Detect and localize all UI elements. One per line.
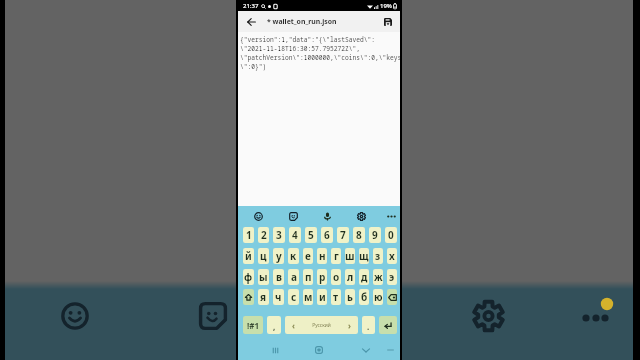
staticText: в: [276, 270, 282, 284]
staticText: х: [389, 249, 395, 263]
staticText: н: [319, 249, 326, 263]
button[interactable]: .: [362, 316, 375, 334]
staticText: \"2021-11-18T16:30:57.795272Z\",: [240, 44, 360, 53]
button[interactable]: э: [387, 269, 397, 285]
button[interactable]: Hide keyboard: [357, 341, 375, 359]
button[interactable]: ь: [345, 289, 355, 305]
button[interactable]: 4: [289, 227, 301, 243]
staticText: ›: [348, 320, 351, 331]
staticText: 9: [372, 228, 378, 242]
button[interactable]: д: [359, 269, 369, 285]
button[interactable]: к: [288, 248, 299, 264]
button[interactable]: н: [317, 248, 327, 264]
button[interactable]: Enter: [379, 316, 397, 334]
button[interactable]: ч: [273, 289, 284, 305]
staticText: * wallet_on_run.json: [267, 17, 337, 26]
button[interactable]: б: [359, 289, 369, 305]
staticText: к: [290, 249, 297, 263]
staticText: ы: [259, 270, 268, 284]
button[interactable]: з: [373, 248, 383, 264]
button[interactable]: в: [273, 269, 284, 285]
staticText: 3: [276, 228, 282, 242]
button[interactable]: и: [317, 289, 327, 305]
button[interactable]: ф: [243, 269, 254, 285]
button[interactable]: 7: [337, 227, 349, 243]
button[interactable]: Voice input: [318, 206, 336, 227]
button[interactable]: щ: [359, 248, 369, 264]
button[interactable]: More options: [382, 206, 400, 227]
staticText: п: [305, 270, 312, 284]
button[interactable]: с: [288, 289, 299, 305]
staticText: ‹: [292, 320, 295, 331]
staticText: я: [260, 290, 267, 304]
button[interactable]: 3: [273, 227, 285, 243]
button[interactable]: х: [387, 248, 397, 264]
staticText: ц: [260, 249, 267, 263]
button[interactable]: Back: [243, 11, 259, 32]
button[interactable]: ж: [373, 269, 383, 285]
staticText: ф: [244, 270, 253, 284]
button[interactable]: 6: [321, 227, 333, 243]
staticText: з: [375, 249, 381, 263]
button[interactable]: 2: [258, 227, 269, 243]
button[interactable]: 0: [385, 227, 397, 243]
button[interactable]: а: [288, 269, 299, 285]
button[interactable]: ц: [258, 248, 269, 264]
button[interactable]: Stickers: [284, 206, 302, 227]
button[interactable]: !#1: [243, 316, 263, 334]
button[interactable]: ш: [345, 248, 355, 264]
button[interactable]: Backspace: [387, 289, 397, 305]
button[interactable]: м: [303, 289, 313, 305]
staticText: ш: [345, 249, 355, 263]
button[interactable]: Emoji: [249, 206, 267, 227]
button[interactable]: я: [258, 289, 269, 305]
button[interactable]: 8: [353, 227, 365, 243]
button[interactable]: р: [317, 269, 327, 285]
button[interactable]: т: [331, 289, 341, 305]
staticText: 1: [246, 228, 252, 242]
staticText: 8: [356, 228, 362, 242]
staticText: 19%: [380, 2, 392, 10]
button[interactable]: ю: [373, 289, 383, 305]
button[interactable]: о: [331, 269, 341, 285]
button[interactable]: Space, Russian: [285, 316, 358, 334]
staticText: д: [361, 270, 368, 284]
staticText: 6: [324, 228, 330, 242]
staticText: 7: [340, 228, 346, 242]
staticText: 21:37: [243, 2, 259, 10]
button[interactable]: 5: [305, 227, 317, 243]
button[interactable]: ,: [267, 316, 281, 334]
button[interactable]: у: [273, 248, 284, 264]
staticText: 0: [388, 228, 394, 242]
button[interactable]: Home: [310, 341, 328, 359]
button[interactable]: л: [345, 269, 355, 285]
staticText: г: [334, 249, 339, 263]
button[interactable]: Shift: [243, 289, 254, 305]
button[interactable]: 1: [243, 227, 254, 243]
button[interactable]: Recents: [266, 341, 284, 359]
button[interactable]: Save: [380, 11, 396, 32]
staticText: м: [304, 290, 313, 304]
staticText: т: [333, 290, 339, 304]
button[interactable]: е: [303, 248, 313, 264]
staticText: Русский: [295, 322, 348, 329]
button[interactable]: Settings: [352, 206, 370, 227]
button[interactable]: й: [243, 248, 254, 264]
staticText: !#1: [247, 320, 259, 331]
staticText: \"patchVersion\":1000000,\"coins\":0,\"k…: [240, 53, 400, 62]
staticText: а: [291, 270, 297, 284]
button[interactable]: 9: [369, 227, 381, 243]
staticText: л: [347, 270, 354, 284]
staticText: .: [367, 321, 370, 332]
staticText: б: [361, 290, 368, 304]
button[interactable]: п: [303, 269, 313, 285]
button[interactable]: г: [331, 248, 341, 264]
button[interactable]: ы: [258, 269, 269, 285]
button[interactable]: Keyboard switcher: [383, 341, 397, 359]
staticText: и: [319, 290, 326, 304]
staticText: с: [291, 290, 297, 304]
staticText: э: [389, 270, 395, 284]
staticText: щ: [359, 249, 369, 263]
staticText: ч: [275, 290, 282, 304]
staticText: й: [245, 249, 252, 263]
